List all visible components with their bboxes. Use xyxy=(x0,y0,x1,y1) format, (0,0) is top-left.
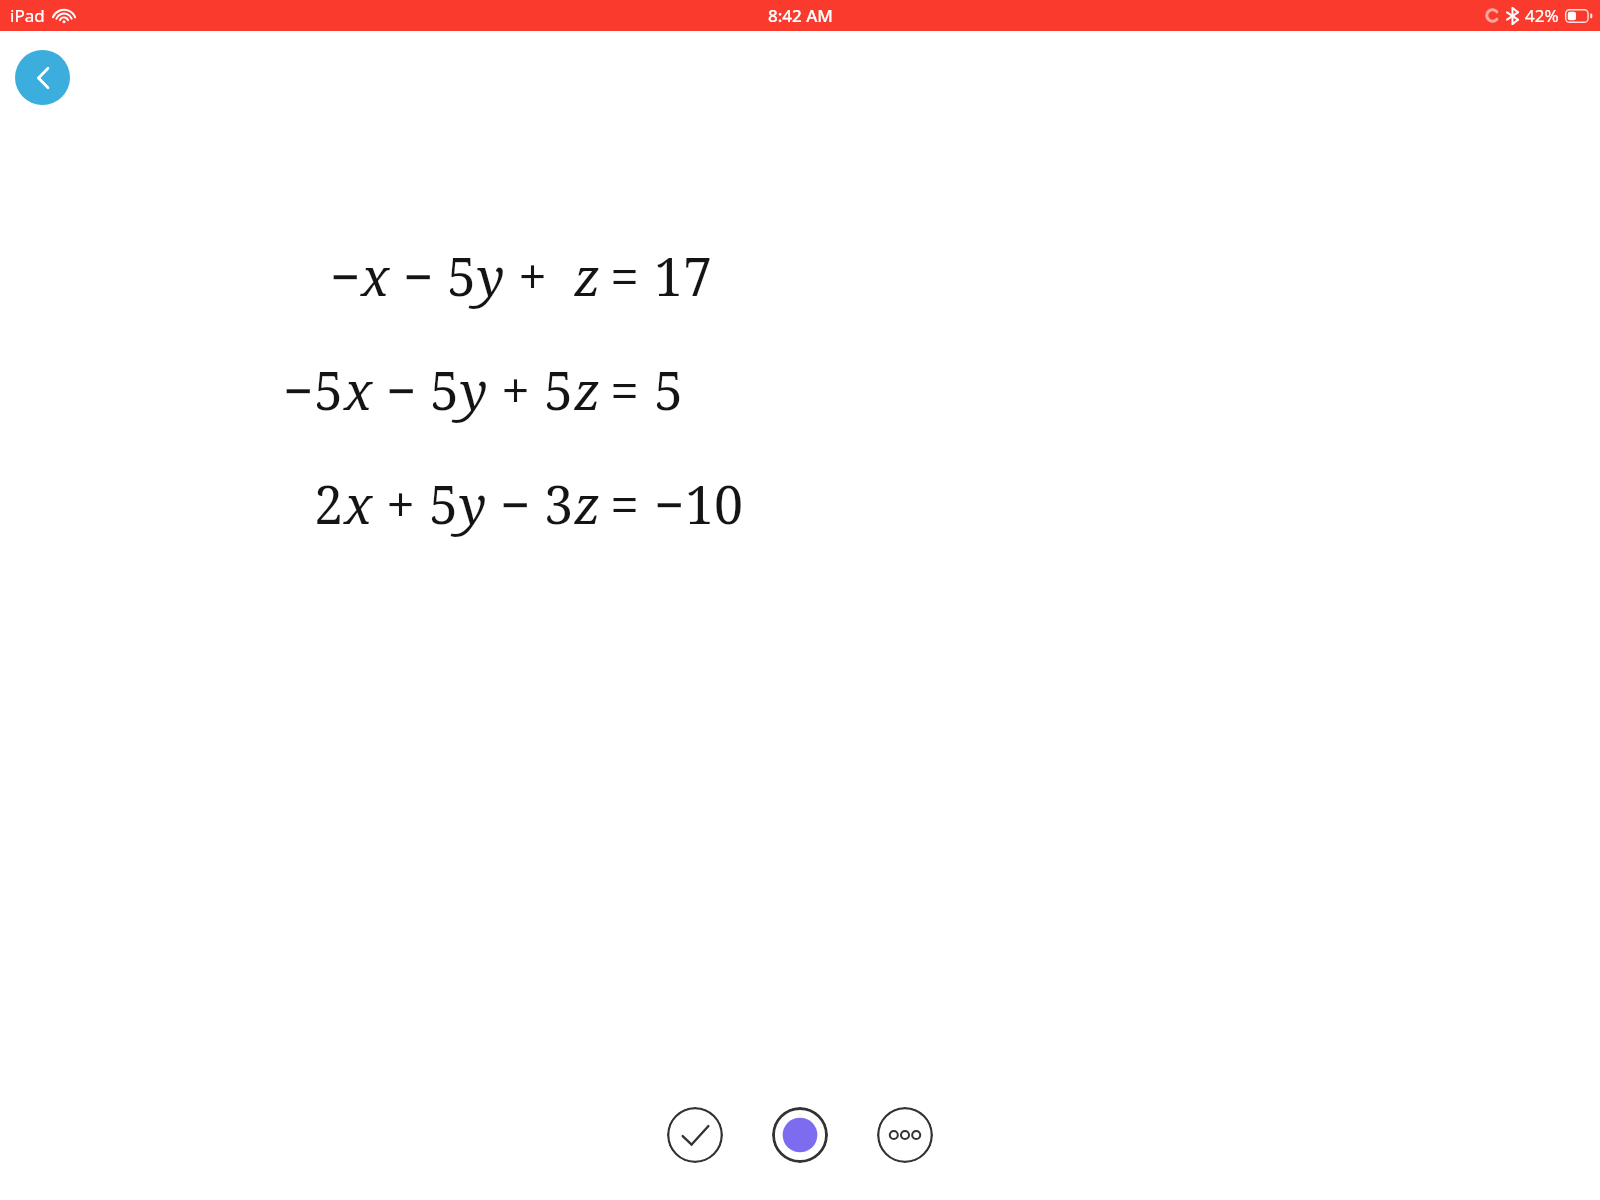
staticText: = xyxy=(610,354,640,425)
button[interactable]: Done xyxy=(667,1107,723,1163)
staticText: + xyxy=(501,354,531,425)
staticText: − xyxy=(330,240,361,311)
staticText: 5 xyxy=(544,354,574,425)
staticText: y xyxy=(460,354,488,425)
staticText: x xyxy=(344,354,373,425)
staticText: z xyxy=(574,468,601,539)
staticText: 8:42 AM xyxy=(768,4,833,27)
staticText: 5 xyxy=(654,354,684,425)
staticText: y xyxy=(459,468,487,539)
staticText: = xyxy=(610,468,640,539)
button[interactable]: Back xyxy=(15,50,70,105)
staticText: − xyxy=(500,468,531,539)
staticText: iPad xyxy=(10,4,45,27)
staticText: 42% xyxy=(1525,4,1559,27)
staticText: 2 xyxy=(314,468,344,539)
staticText: x xyxy=(361,240,390,311)
staticText: x xyxy=(344,468,373,539)
staticText: 5 xyxy=(447,240,477,311)
staticText: − xyxy=(386,354,417,425)
staticText: y xyxy=(477,240,505,311)
staticText: − xyxy=(283,354,314,425)
staticText: = xyxy=(610,240,640,311)
staticText: z xyxy=(574,240,601,311)
button[interactable]: Colour xyxy=(772,1107,828,1163)
staticText: 3 xyxy=(544,468,574,539)
button[interactable]: More options xyxy=(877,1107,933,1163)
staticText: − xyxy=(403,240,434,311)
staticText: z xyxy=(574,354,601,425)
staticText: − xyxy=(654,468,685,539)
staticText: 5 xyxy=(314,354,344,425)
staticText: + xyxy=(386,468,416,539)
staticText: + xyxy=(518,240,548,311)
staticText: 17 xyxy=(654,240,713,311)
staticText: 5 xyxy=(430,354,460,425)
staticText: 10 xyxy=(685,468,744,539)
staticText: 5 xyxy=(429,468,459,539)
